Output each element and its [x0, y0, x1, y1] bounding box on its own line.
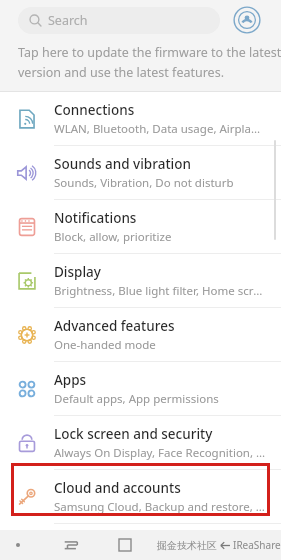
staticText: SOFTWARE UPDATE [18, 26, 141, 44]
staticText: Search [48, 12, 88, 29]
staticText: version and use the latest features. [18, 64, 224, 81]
staticText: Default apps, App permissions [54, 391, 219, 407]
staticText: Notifications [54, 209, 137, 227]
button[interactable]: Connections [0, 92, 281, 145]
button[interactable]: Recents [0, 530, 94, 560]
staticText: WLAN, Bluetooth, Data usage, Airplane mo… [54, 121, 267, 137]
staticText: Sounds, Vibration, Do not disturb [54, 175, 234, 191]
button[interactable]: Search [18, 7, 220, 34]
staticText: Tap here to update the firmware to the l… [18, 44, 281, 61]
button[interactable]: Account [232, 5, 262, 35]
staticText: Cloud and accounts [54, 479, 181, 497]
button[interactable]: Lock screen and security [0, 416, 281, 469]
staticText: Apps [54, 371, 87, 389]
staticText: Advanced features [54, 317, 175, 335]
button[interactable]: Advanced features [0, 308, 281, 361]
button[interactable]: Display [0, 254, 281, 307]
staticText: Connections [54, 101, 135, 119]
staticText: Always On Display, Face Recognition, Fin… [54, 445, 267, 461]
staticText: Display [54, 263, 101, 281]
button[interactable]: Apps [0, 362, 281, 415]
staticText: IReaShare [233, 538, 281, 552]
staticText: Block, allow, prioritize [54, 229, 172, 245]
staticText: Brightness, Blue light filter, Home scre… [54, 283, 267, 299]
staticText: 掘金技术社区 [157, 539, 217, 552]
button[interactable]: Back [156, 530, 281, 560]
button[interactable]: Home [94, 530, 156, 560]
staticText: Samsung Cloud, Backup and restore, Smart… [54, 499, 267, 515]
staticText: Lock screen and security [54, 425, 213, 443]
button[interactable]: Notifications [0, 200, 281, 253]
button[interactable]: Sounds and vibration [0, 146, 281, 199]
staticText: Sounds and vibration [54, 155, 191, 173]
staticText: One-handed mode [54, 337, 156, 353]
button[interactable]: Cloud and accounts [0, 470, 281, 523]
